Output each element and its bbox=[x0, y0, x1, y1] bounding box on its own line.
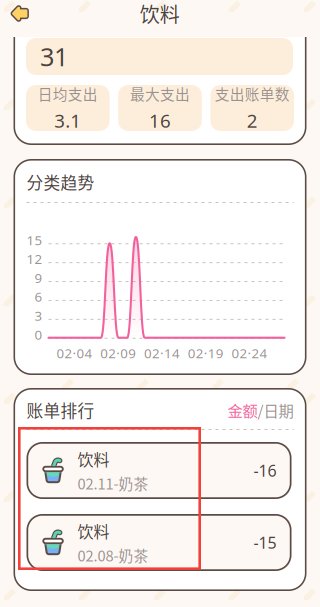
staticText: 日均支出 bbox=[38, 83, 98, 104]
staticText: 12 bbox=[26, 250, 42, 268]
staticText: -16 bbox=[253, 460, 276, 481]
staticText: 02·24 bbox=[231, 344, 267, 362]
staticText: 9 bbox=[34, 269, 42, 287]
staticText: 02·14 bbox=[144, 344, 180, 362]
staticText: 3.1 bbox=[54, 108, 81, 133]
staticText: 02·19 bbox=[188, 344, 224, 362]
staticText: 3 bbox=[34, 307, 42, 324]
staticText: 饮料 bbox=[77, 447, 109, 470]
staticText: 0 bbox=[34, 326, 42, 343]
button[interactable]: 饮料 bbox=[26, 442, 291, 499]
staticText: 02.11-奶茶 bbox=[77, 472, 148, 494]
button[interactable]: 饮料 bbox=[26, 514, 291, 571]
staticText: 2 bbox=[247, 108, 258, 133]
staticText: 饮料 bbox=[77, 519, 109, 542]
staticText: /日期 bbox=[257, 399, 293, 421]
staticText: 最大支出 bbox=[130, 83, 190, 104]
staticText: 账单排行 bbox=[26, 398, 94, 422]
staticText: 饮料 bbox=[140, 0, 180, 28]
staticText: 02·04 bbox=[56, 344, 92, 362]
staticText: 6 bbox=[34, 288, 42, 305]
button[interactable]: Back bbox=[0, 1, 41, 26]
staticText: 31 bbox=[40, 40, 68, 73]
staticText: 支出账单数 bbox=[215, 83, 290, 104]
staticText: 15 bbox=[26, 231, 42, 249]
button[interactable]: 金额 bbox=[227, 399, 293, 421]
staticText: 16 bbox=[149, 108, 171, 133]
staticText: 02·09 bbox=[100, 344, 136, 362]
staticText: 分类趋势 bbox=[26, 170, 94, 194]
staticText: -15 bbox=[253, 532, 276, 553]
staticText: 金额 bbox=[227, 399, 257, 421]
staticText: 02.08-奶茶 bbox=[77, 544, 148, 566]
